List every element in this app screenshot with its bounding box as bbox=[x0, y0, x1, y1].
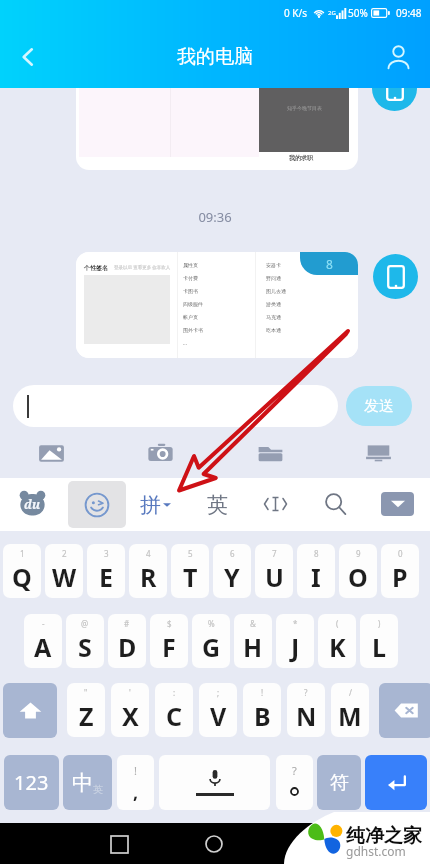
button[interactable]: Recents bbox=[100, 825, 138, 863]
staticText: 围外卡书 bbox=[183, 327, 203, 333]
button[interactable]: ) bbox=[360, 614, 398, 668]
button[interactable]: 个性签名 bbox=[76, 252, 358, 358]
button[interactable]: 1 bbox=[3, 544, 41, 598]
staticText: G bbox=[202, 630, 221, 664]
button[interactable]: 发送 bbox=[346, 386, 412, 426]
staticText: - bbox=[42, 618, 45, 629]
staticText: 野问通 bbox=[266, 275, 281, 281]
staticText: 帐户页 bbox=[183, 314, 198, 320]
staticText: O bbox=[348, 560, 368, 594]
button[interactable]: Device avatar bbox=[372, 66, 417, 111]
staticText: V bbox=[210, 699, 227, 733]
button[interactable]: % bbox=[192, 614, 230, 668]
staticText: R bbox=[140, 560, 157, 594]
button[interactable]: Profile bbox=[374, 33, 422, 81]
staticText: & bbox=[250, 618, 256, 629]
button[interactable] bbox=[365, 755, 427, 810]
button[interactable]: 知乎今晚节目表 bbox=[76, 60, 358, 170]
staticText: 吃本通 bbox=[266, 327, 281, 333]
staticText: ; bbox=[217, 687, 220, 698]
staticText: 安器卡 bbox=[266, 262, 281, 268]
staticText: H bbox=[243, 630, 263, 664]
button[interactable]: Gallery bbox=[29, 433, 73, 473]
staticText: N bbox=[296, 699, 317, 733]
staticText: ? bbox=[292, 763, 297, 778]
button[interactable]: Move cursor bbox=[256, 485, 294, 523]
staticText: , bbox=[133, 780, 139, 805]
button[interactable]: $ bbox=[150, 614, 188, 668]
button[interactable]: 6 bbox=[213, 544, 251, 598]
button[interactable]: * bbox=[276, 614, 314, 668]
button[interactable]: # bbox=[108, 614, 146, 668]
staticText: 发送 bbox=[364, 397, 394, 416]
button[interactable]: Hide keyboard bbox=[381, 492, 414, 516]
button[interactable]: 中 bbox=[63, 755, 112, 810]
button[interactable]: Camera bbox=[138, 433, 182, 473]
staticText: 属性页 bbox=[183, 262, 198, 268]
staticText: 符 bbox=[330, 771, 349, 795]
staticText: 7 bbox=[272, 548, 277, 559]
button[interactable]: Baidu IME bbox=[13, 484, 51, 522]
staticText: U bbox=[265, 560, 284, 594]
button[interactable]: : bbox=[155, 683, 193, 737]
button[interactable]: Backspace bbox=[379, 683, 430, 738]
button[interactable]: ! bbox=[117, 755, 154, 810]
staticText: Q bbox=[12, 560, 32, 594]
staticText: K bbox=[329, 630, 346, 664]
button[interactable]: 3 bbox=[87, 544, 125, 598]
button[interactable]: 4 bbox=[129, 544, 167, 598]
staticText: 卡图书 bbox=[183, 288, 198, 294]
staticText: 2G bbox=[328, 9, 336, 17]
staticText: 个性签名 bbox=[84, 264, 108, 272]
button[interactable]: Search bbox=[316, 485, 354, 523]
staticText: 我的求职 bbox=[289, 154, 313, 162]
staticText: * bbox=[293, 618, 298, 629]
button[interactable]: 123 bbox=[4, 755, 59, 810]
staticText: 50% bbox=[348, 6, 368, 20]
button[interactable] bbox=[13, 385, 338, 427]
button[interactable]: ? bbox=[287, 683, 325, 737]
staticText: 3 bbox=[104, 548, 109, 559]
button[interactable]: Computer bbox=[356, 433, 400, 473]
staticText: I bbox=[311, 560, 321, 594]
staticText: 1 bbox=[20, 548, 25, 559]
button[interactable]: Files bbox=[248, 433, 292, 473]
button[interactable] bbox=[159, 755, 270, 810]
button[interactable]: - bbox=[24, 614, 62, 668]
button[interactable]: 8 bbox=[297, 544, 335, 598]
staticText: S bbox=[78, 630, 92, 664]
button[interactable]: & bbox=[234, 614, 272, 668]
staticText: Z bbox=[79, 699, 94, 733]
button[interactable]: 拼 bbox=[140, 484, 171, 526]
staticText: L bbox=[372, 630, 386, 664]
button[interactable]: 0 bbox=[381, 544, 419, 598]
staticText: 拼 bbox=[140, 492, 161, 518]
staticText: gdhst.com bbox=[346, 843, 406, 859]
staticText: 我的电脑 bbox=[177, 45, 253, 69]
staticText: / bbox=[349, 687, 352, 698]
staticText: 英 bbox=[93, 783, 103, 796]
button[interactable]: Device avatar bbox=[373, 254, 418, 299]
staticText: 8 bbox=[326, 256, 333, 272]
button[interactable]: 2 bbox=[45, 544, 83, 598]
staticText: X bbox=[122, 699, 139, 733]
staticText: ' bbox=[129, 687, 131, 698]
button[interactable]: Emoji bbox=[68, 481, 126, 528]
staticText: Y bbox=[224, 560, 240, 594]
button[interactable]: 9 bbox=[339, 544, 377, 598]
button[interactable]: 英 bbox=[198, 484, 236, 526]
button[interactable]: 5 bbox=[171, 544, 209, 598]
button[interactable]: ' bbox=[111, 683, 149, 737]
button[interactable]: Shift bbox=[3, 683, 57, 738]
button[interactable]: Back bbox=[4, 33, 52, 81]
button[interactable]: @ bbox=[66, 614, 104, 668]
button[interactable]: ! bbox=[243, 683, 281, 737]
button[interactable]: ; bbox=[199, 683, 237, 737]
button[interactable]: ? bbox=[276, 755, 313, 810]
button[interactable]: Home bbox=[195, 825, 233, 863]
button[interactable]: / bbox=[331, 683, 369, 737]
button[interactable]: 7 bbox=[255, 544, 293, 598]
button[interactable]: 符 bbox=[317, 755, 361, 810]
button[interactable]: " bbox=[67, 683, 105, 737]
button[interactable]: ( bbox=[318, 614, 356, 668]
